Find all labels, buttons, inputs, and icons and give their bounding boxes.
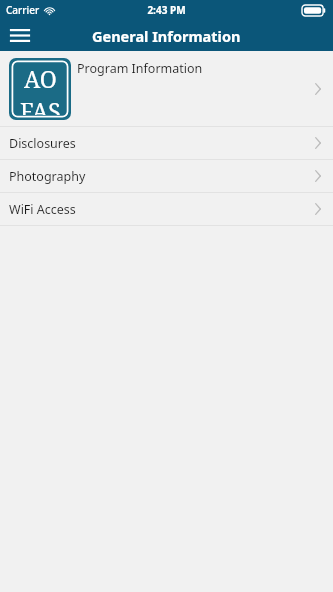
staticText: 2:43 PM <box>147 3 186 17</box>
staticText: Disclosures <box>9 135 76 152</box>
button[interactable]: Disclosures <box>0 127 333 159</box>
staticText: WiFi Access <box>9 201 76 218</box>
button[interactable]: WiFi Access <box>0 193 333 225</box>
staticText: Program Information <box>77 60 203 77</box>
button[interactable]: Photography <box>0 160 333 192</box>
staticText: AO <box>24 63 57 94</box>
staticText: General Information <box>92 26 241 46</box>
button[interactable]: Menu <box>0 20 40 51</box>
staticText: Carrier <box>6 3 40 17</box>
staticText: Photography <box>9 168 86 185</box>
button[interactable]: AO <box>0 51 333 126</box>
staticText: FAS <box>20 95 61 115</box>
